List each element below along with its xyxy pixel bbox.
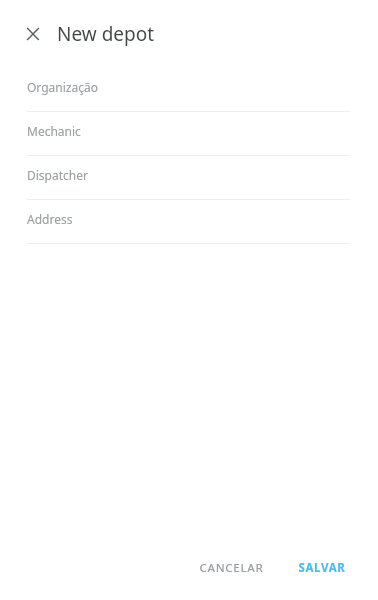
button[interactable]: Mechanic — [27, 112, 350, 156]
button[interactable]: Address — [27, 200, 350, 244]
staticText: Address — [27, 211, 73, 227]
staticText: New depot — [57, 21, 155, 47]
button[interactable]: CANCELAR — [189, 552, 274, 584]
staticText: Mechanic — [27, 123, 81, 139]
staticText: Dispatcher — [27, 167, 88, 183]
button[interactable]: Organização — [27, 68, 350, 112]
button[interactable]: Dispatcher — [27, 156, 350, 200]
staticText: SALVAR — [298, 560, 346, 576]
button[interactable]: Close — [21, 22, 45, 46]
staticText: Organização — [27, 79, 98, 95]
staticText: CANCELAR — [199, 560, 264, 576]
button[interactable]: SALVAR — [288, 552, 356, 584]
